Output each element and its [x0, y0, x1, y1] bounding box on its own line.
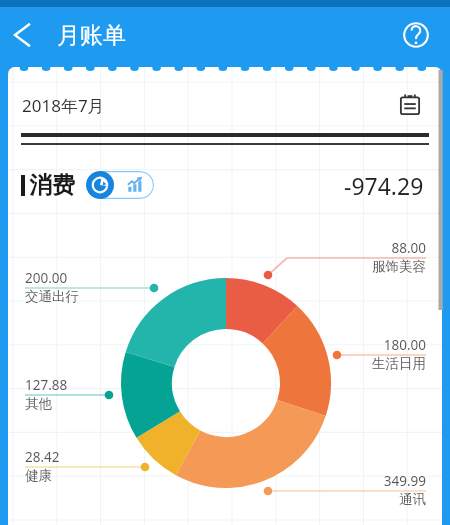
- staticText: 88.00: [391, 239, 426, 257]
- button[interactable]: Back: [0, 11, 44, 59]
- staticText: 其他: [25, 395, 52, 412]
- staticText: 消费: [29, 171, 75, 200]
- button[interactable]: Bill list: [392, 87, 428, 123]
- staticText: 交通出行: [25, 288, 79, 305]
- staticText: 127.88: [25, 376, 68, 394]
- staticText: 健康: [25, 467, 52, 484]
- button[interactable]: 2018年7月: [8, 85, 442, 125]
- button[interactable]: Chart type: [86, 171, 154, 199]
- staticText: 2018年7月: [22, 94, 105, 117]
- staticText: 180.00: [383, 336, 426, 354]
- staticText: 服饰美容: [372, 258, 426, 275]
- staticText: 349.99: [383, 472, 426, 490]
- staticText: 200.00: [25, 269, 68, 287]
- staticText: 通讯: [399, 491, 426, 508]
- staticText: 28.42: [25, 448, 60, 466]
- staticText: 月账单: [57, 21, 126, 50]
- staticText: -974.29: [344, 170, 424, 201]
- button[interactable]: Help: [392, 11, 440, 59]
- staticText: 生活日用: [372, 355, 426, 372]
